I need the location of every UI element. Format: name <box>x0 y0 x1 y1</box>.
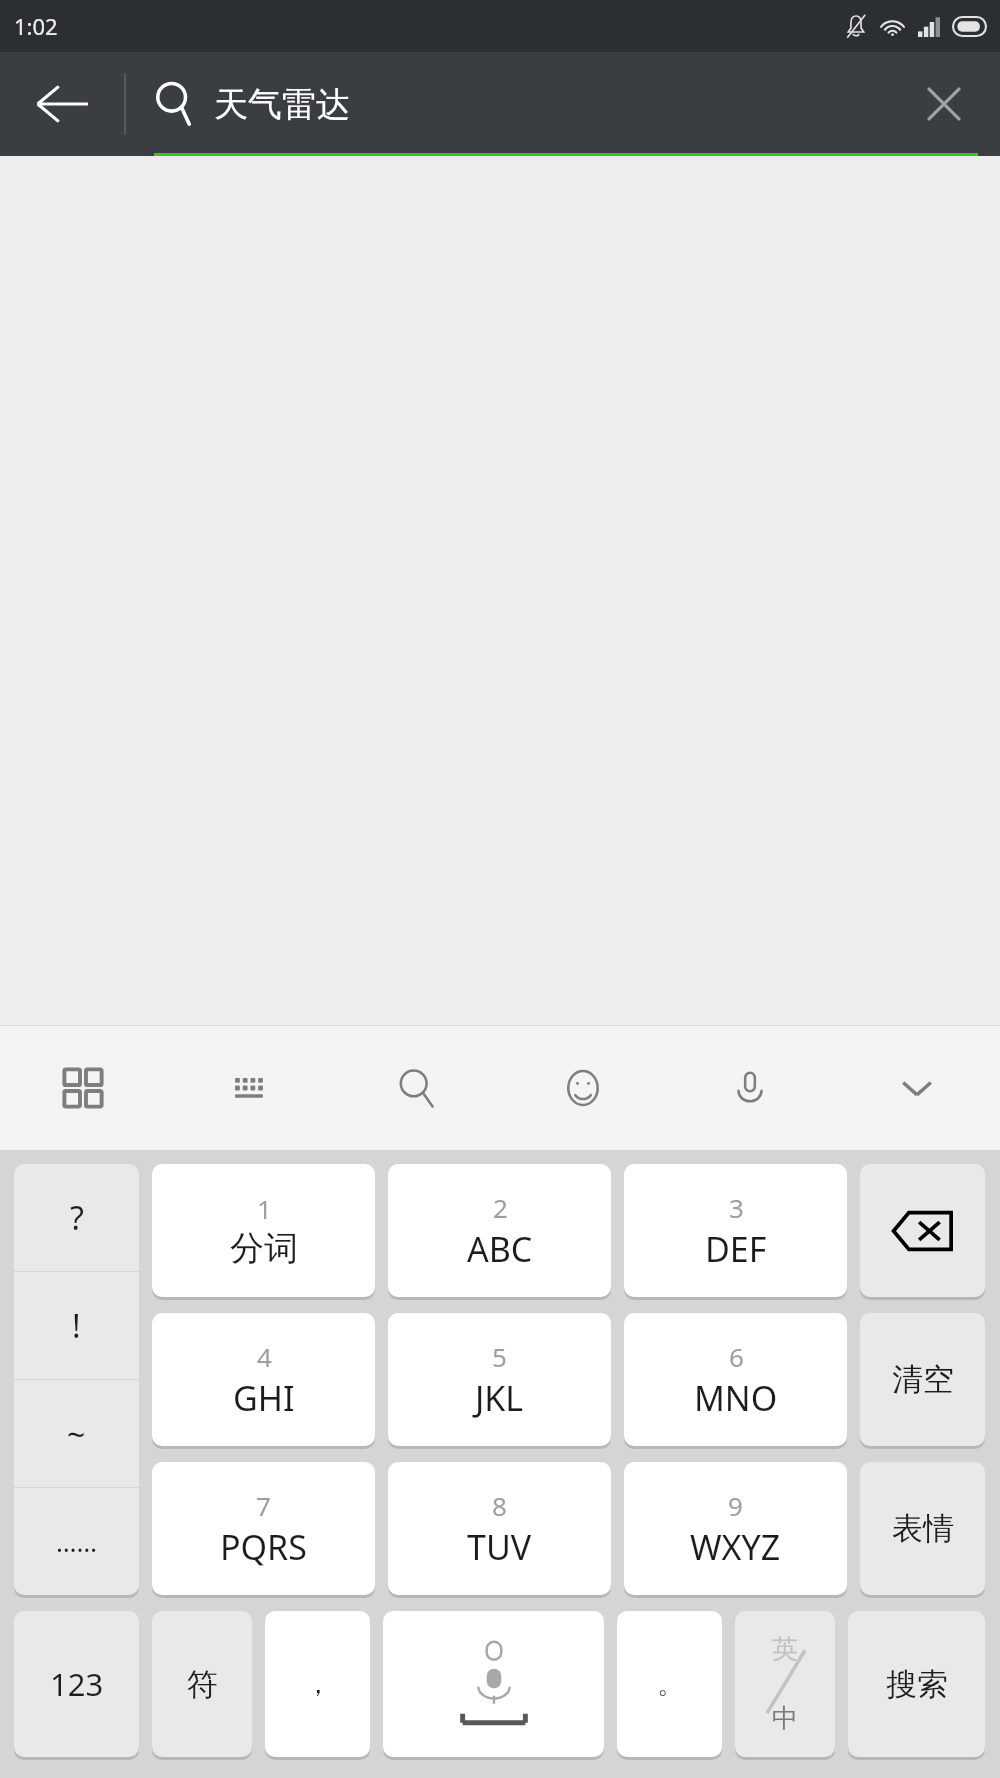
button[interactable]: 123 <box>14 1611 139 1760</box>
button[interactable]: 1 分词 <box>152 1164 375 1300</box>
staticText: 1 <box>257 1191 272 1226</box>
staticText: 3 <box>729 1190 744 1225</box>
button[interactable]: 3 DEF <box>624 1164 847 1300</box>
staticText: 天气雷达 <box>214 83 350 126</box>
staticText: 中 <box>772 1702 798 1735</box>
staticText: 英 <box>772 1633 798 1666</box>
staticText: 符 <box>187 1665 218 1704</box>
staticText: DEF <box>705 1226 767 1272</box>
staticText: 清空 <box>892 1360 954 1399</box>
staticText: 6 <box>729 1339 744 1374</box>
staticText: ? <box>70 1196 84 1240</box>
button[interactable]: Search <box>332 1026 499 1150</box>
staticText: 9 <box>728 1488 743 1523</box>
button[interactable]: Keyboard layouts <box>0 1026 166 1150</box>
button[interactable]: ， <box>265 1611 370 1760</box>
staticText: ~ <box>67 1412 86 1456</box>
button[interactable]: 清空 <box>860 1313 985 1449</box>
button[interactable]: 。 <box>617 1611 722 1760</box>
button[interactable]: 9 WXYZ <box>624 1462 847 1598</box>
staticText: 2 <box>493 1190 508 1225</box>
staticText: …… <box>56 1524 98 1559</box>
staticText: ABC <box>467 1226 533 1272</box>
button[interactable]: Space <box>383 1611 604 1760</box>
staticText: 。 <box>657 1668 683 1701</box>
button[interactable]: 5 JKL <box>388 1313 611 1449</box>
button[interactable]: 符 <box>152 1611 252 1760</box>
button[interactable]: 6 MNO <box>624 1313 847 1449</box>
button[interactable]: Backspace <box>860 1164 985 1300</box>
staticText: MNO <box>694 1375 778 1421</box>
button[interactable]: ~ <box>14 1380 139 1487</box>
button[interactable]: Voice input <box>666 1026 833 1150</box>
button[interactable]: 2 ABC <box>388 1164 611 1300</box>
button[interactable]: 8 TUV <box>388 1462 611 1598</box>
staticText: WXYZ <box>690 1524 781 1570</box>
staticText: 5 <box>492 1339 507 1374</box>
staticText: 1:02 <box>14 11 58 41</box>
staticText: 8 <box>492 1488 507 1523</box>
button[interactable]: Clear <box>888 52 1000 156</box>
button[interactable]: ? <box>14 1164 139 1271</box>
staticText: ! <box>72 1304 81 1348</box>
button[interactable]: Emoji <box>499 1026 666 1150</box>
button[interactable]: Keyboard type <box>166 1026 332 1150</box>
button[interactable]: 表情 <box>860 1462 985 1598</box>
staticText: PQRS <box>220 1524 307 1570</box>
staticText: JKL <box>475 1375 524 1421</box>
staticText: 123 <box>50 1663 104 1705</box>
button[interactable]: Switch language <box>735 1611 835 1760</box>
staticText: TUV <box>467 1524 532 1570</box>
button[interactable]: Back <box>0 52 124 156</box>
staticText: 4 <box>257 1339 272 1374</box>
staticText: 7 <box>256 1488 271 1523</box>
button[interactable]: Hide keyboard <box>833 1026 1000 1150</box>
staticText: 搜索 <box>886 1665 948 1704</box>
button[interactable]: ! <box>14 1272 139 1379</box>
staticText: GHI <box>233 1375 295 1421</box>
button[interactable]: 4 GHI <box>152 1313 375 1449</box>
staticText: 分词 <box>230 1227 298 1270</box>
button[interactable]: 搜索 <box>848 1611 985 1760</box>
button[interactable]: …… <box>14 1488 139 1595</box>
staticText: ， <box>305 1668 331 1701</box>
staticText: 表情 <box>892 1509 954 1548</box>
button[interactable]: 7 PQRS <box>152 1462 375 1598</box>
